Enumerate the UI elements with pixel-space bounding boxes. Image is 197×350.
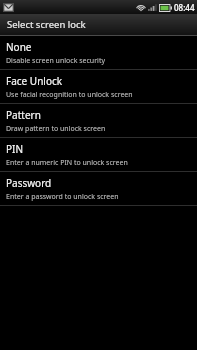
button[interactable]: PIN [0,138,197,171]
staticText: Use facial recognition to unlock screen [6,90,133,100]
staticText: 08:44 [174,2,195,13]
button[interactable]: None [0,36,197,69]
staticText: Password [6,176,52,190]
staticText: Enter a numeric PIN to unlock screen [6,158,128,168]
button[interactable]: Face Unlock [0,70,197,103]
staticText: Pattern [6,108,41,122]
staticText: Disable screen unlock security [6,56,105,66]
staticText: PIN [6,142,24,156]
staticText: Enter a password to unlock screen [6,192,119,202]
staticText: Select screen lock [7,18,86,31]
staticText: Face Unlock [6,74,63,88]
button[interactable]: Password [0,172,197,205]
button[interactable]: Pattern [0,104,197,137]
staticText: Draw pattern to unlock screen [6,124,106,134]
staticText: None [6,40,32,54]
